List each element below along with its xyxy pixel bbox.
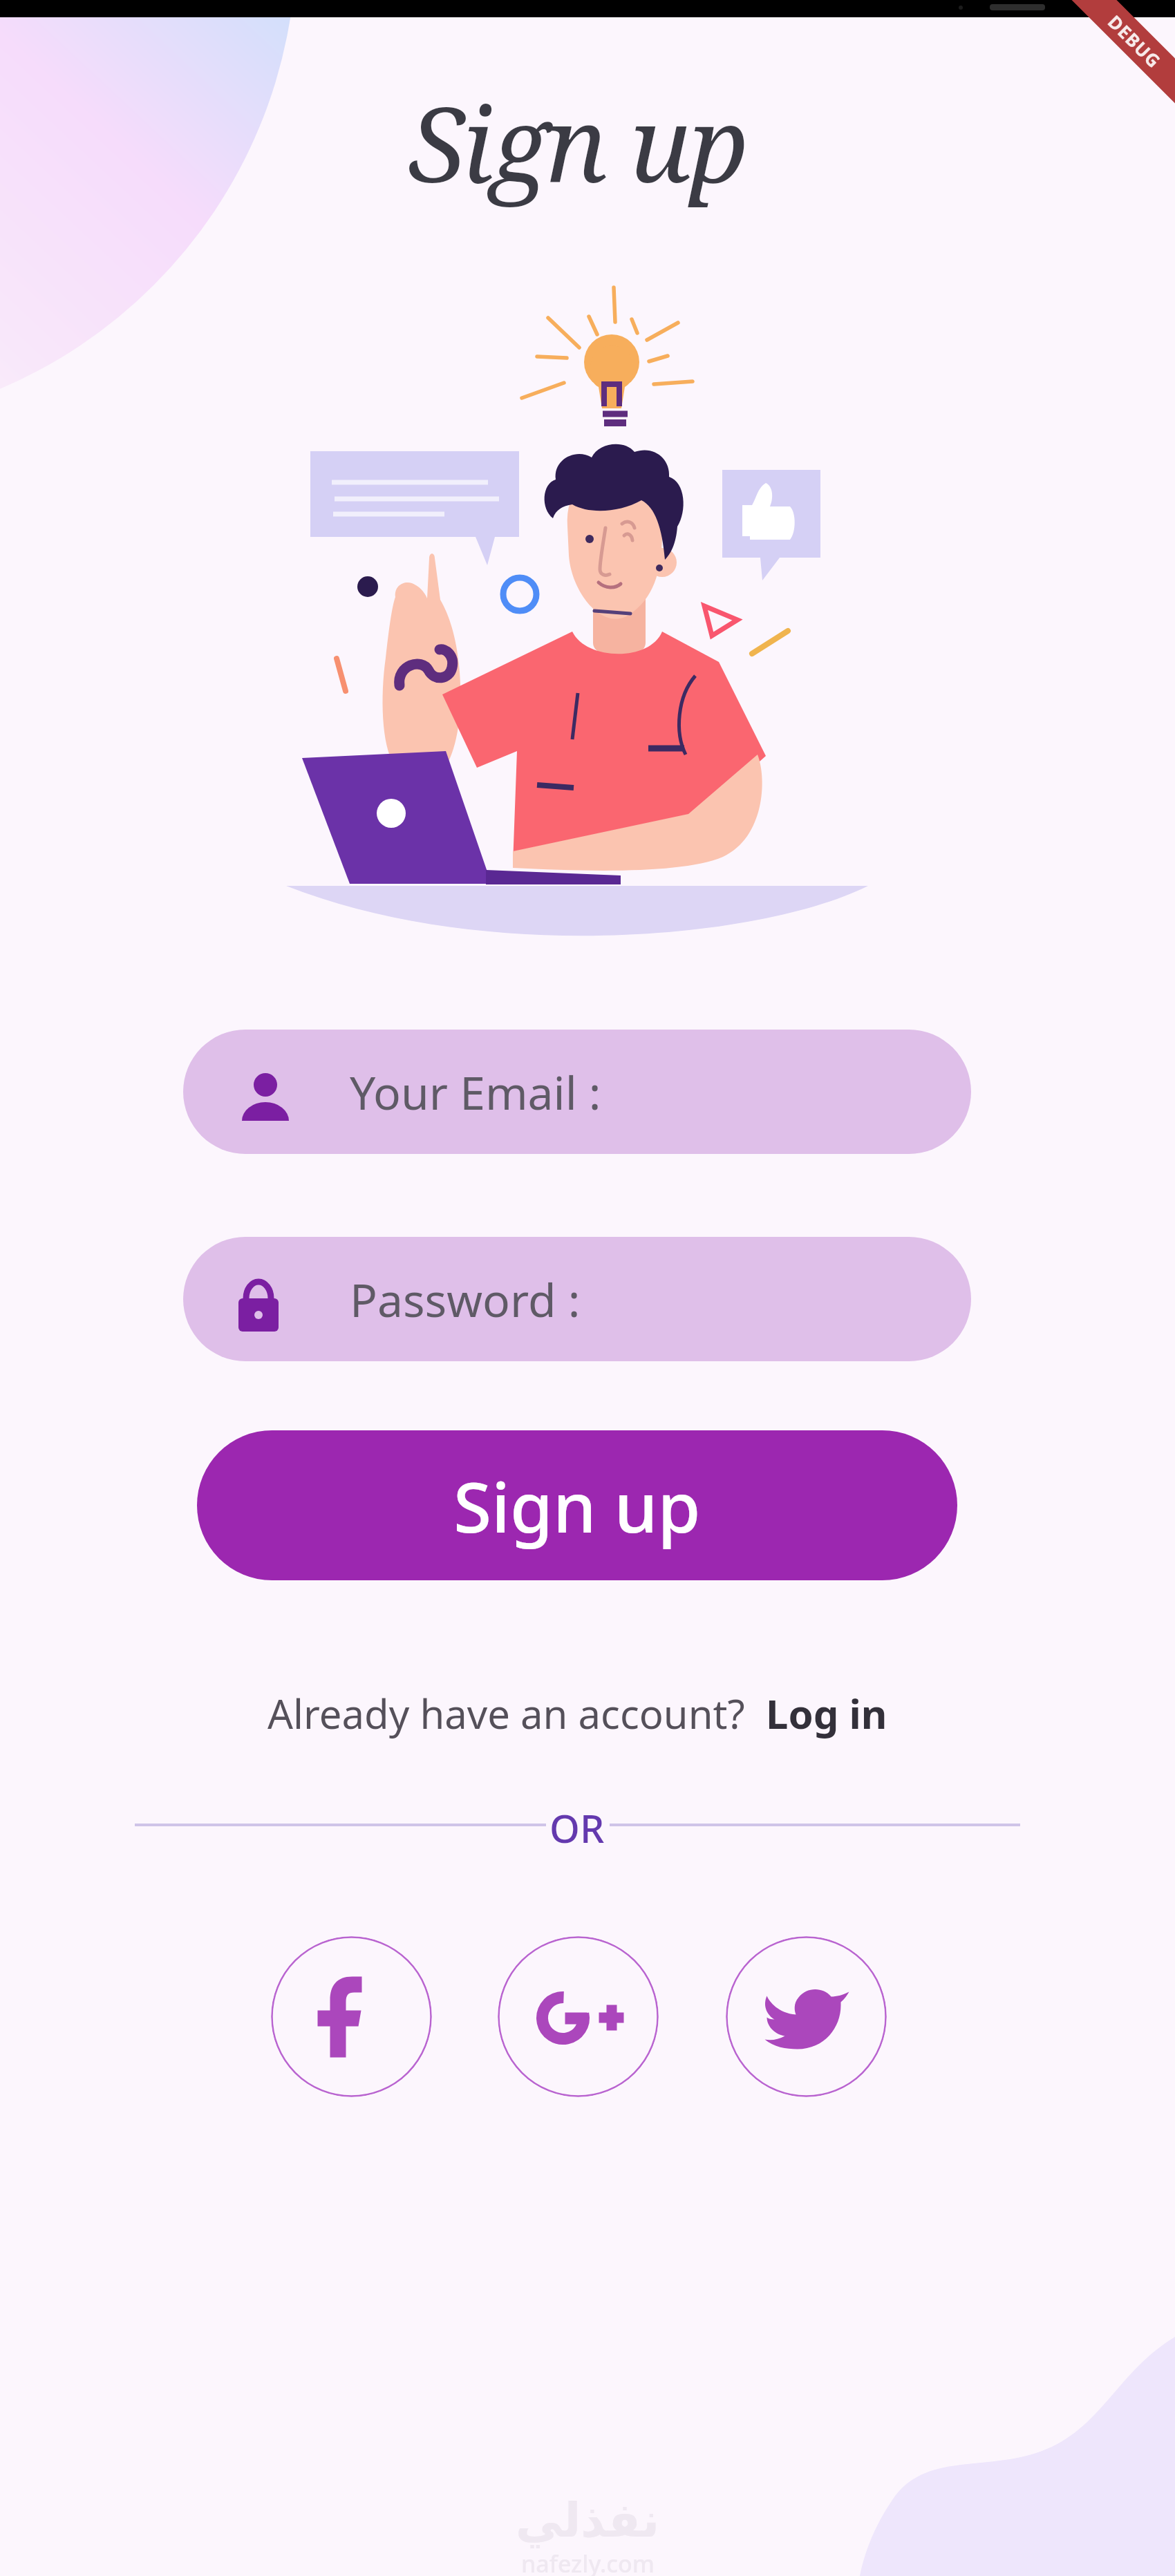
button[interactable]: Sign up with Facebook <box>271 1936 432 2097</box>
button[interactable]: Sign up <box>197 1430 957 1580</box>
button[interactable]: Sign up with Twitter <box>726 1936 887 2097</box>
staticText: Log in <box>766 1686 887 1741</box>
staticText: Your Email : <box>350 1061 601 1123</box>
staticText: DEBUG <box>1103 9 1167 73</box>
staticText: OR <box>549 1801 605 1854</box>
staticText: Password : <box>350 1268 581 1330</box>
button[interactable]: Your Email : <box>183 1030 971 1154</box>
button[interactable]: Password : <box>183 1237 971 1361</box>
button[interactable]: Log in <box>766 1686 887 1741</box>
staticText: Already have an account? <box>267 1686 766 1741</box>
staticText: Sign up <box>453 1459 701 1553</box>
staticText: Sign up <box>408 72 746 213</box>
staticText: nafezly.com <box>521 2548 655 2576</box>
button[interactable]: Sign up with Google <box>498 1936 659 2097</box>
staticText: نفذلي <box>516 2493 660 2548</box>
